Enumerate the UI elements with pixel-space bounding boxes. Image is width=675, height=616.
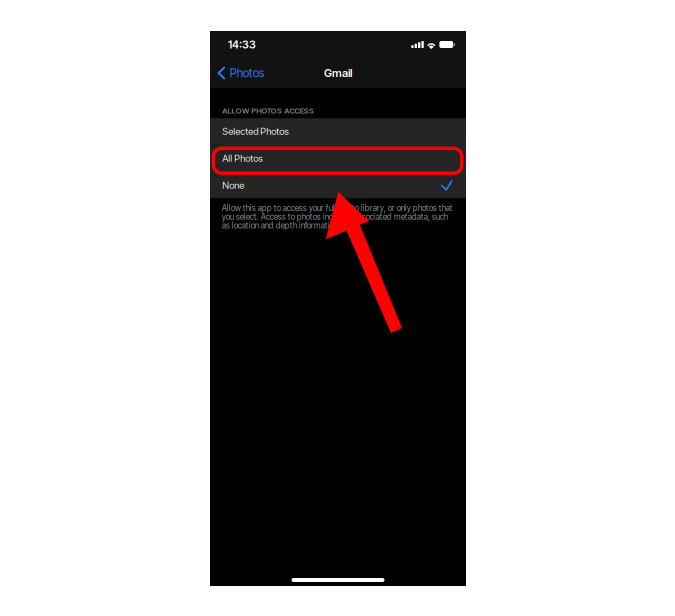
staticText: Allow this app to access your full photo… xyxy=(222,203,453,213)
button[interactable]: Selected Photos xyxy=(210,118,466,144)
button[interactable]: None xyxy=(210,172,466,198)
button[interactable]: All Photos xyxy=(210,145,466,171)
staticText: Photos xyxy=(230,66,265,80)
staticText: None xyxy=(222,179,244,191)
staticText: Gmail xyxy=(324,66,352,80)
staticText: you select. Access to photos includes as… xyxy=(222,212,448,222)
staticText: ALLOW PHOTOS ACCESS xyxy=(222,106,314,115)
staticText: as location and depth information. xyxy=(222,221,340,230)
staticText: All Photos xyxy=(222,152,263,164)
staticText: 14:33 xyxy=(228,38,256,51)
button[interactable]: Photos xyxy=(210,58,273,88)
staticText: Selected Photos xyxy=(222,125,289,137)
